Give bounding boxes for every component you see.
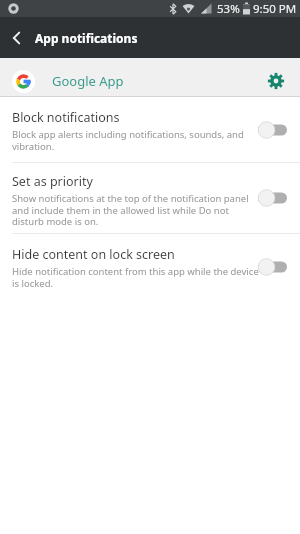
button[interactable] <box>0 17 32 58</box>
button[interactable] <box>258 121 287 139</box>
staticText: App notifications <box>35 30 138 46</box>
button[interactable]: Block notifications <box>0 97 300 162</box>
staticText: 9:50 PM <box>253 1 297 17</box>
staticText: 53% <box>217 1 240 17</box>
staticText: Set as priority <box>12 173 93 190</box>
button[interactable] <box>258 258 287 276</box>
button[interactable] <box>258 189 287 207</box>
button[interactable]: Google App <box>0 58 300 96</box>
staticText: Hide content on lock screen <box>12 246 175 263</box>
staticText: Hide notification content from this app … <box>12 265 259 289</box>
staticText: Show notifications at the top of the not… <box>12 192 249 227</box>
button[interactable]: Set as priority <box>0 163 300 233</box>
staticText: Block app alerts including notifications… <box>12 128 244 152</box>
button[interactable] <box>264 69 288 93</box>
staticText: Block notifications <box>12 109 120 126</box>
button[interactable]: Hide content on lock screen <box>0 234 300 300</box>
staticText: Google App <box>52 72 124 90</box>
